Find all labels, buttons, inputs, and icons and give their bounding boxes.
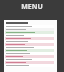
button[interactable] xyxy=(5,34,54,37)
staticText: MENU xyxy=(21,2,43,12)
button[interactable] xyxy=(5,49,54,52)
button[interactable] xyxy=(5,40,54,43)
button[interactable] xyxy=(5,28,54,31)
button[interactable] xyxy=(5,31,54,34)
button[interactable] xyxy=(5,64,54,67)
button[interactable] xyxy=(5,43,54,46)
button[interactable] xyxy=(5,52,54,55)
button[interactable] xyxy=(5,61,54,64)
button[interactable] xyxy=(5,46,54,49)
button[interactable] xyxy=(5,58,54,61)
button[interactable] xyxy=(5,37,54,40)
button[interactable] xyxy=(5,55,54,58)
button[interactable] xyxy=(5,25,54,28)
